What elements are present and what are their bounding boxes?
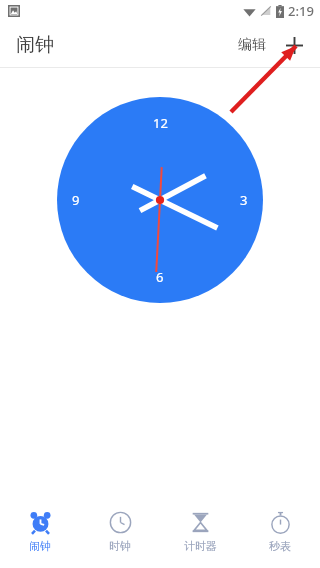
button[interactable]: 计时器 <box>160 505 240 559</box>
button[interactable]: 时钟 <box>80 505 160 559</box>
button[interactable]: Add alarm <box>279 30 309 60</box>
staticText: 编辑 <box>238 36 266 54</box>
staticText: 闹钟 <box>16 33 54 57</box>
button[interactable]: 12 <box>57 97 263 303</box>
staticText: 9 <box>72 191 80 209</box>
staticText: 秒表 <box>269 539 291 553</box>
staticText: 闹钟 <box>29 539 51 553</box>
button[interactable]: 秒表 <box>240 505 320 559</box>
staticText: 2:19 <box>288 2 314 20</box>
button[interactable]: 闹钟 <box>0 505 80 559</box>
button[interactable]: 编辑 <box>232 28 272 62</box>
staticText: 3 <box>240 191 248 209</box>
staticText: 时钟 <box>109 539 131 553</box>
staticText: 计时器 <box>184 539 217 553</box>
staticText: 12 <box>153 114 168 132</box>
staticText: 6 <box>156 268 164 286</box>
